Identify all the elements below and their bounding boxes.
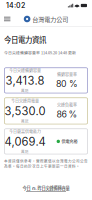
staticText: 86 % (56, 109, 77, 120)
staticText: 台灣電力公司 (32, 15, 68, 23)
staticText: 4,069.4 (4, 135, 45, 149)
staticText: 今日電力資訊 (4, 34, 46, 45)
staticText: 今日尖峰備轉容量 (9, 68, 41, 73)
staticText: 今日尖峰用電量 (11, 98, 39, 104)
staticText: 萬瓩 (21, 88, 29, 93)
staticText: 3,530.0 (4, 104, 45, 118)
staticText: 備轉容量率 (57, 72, 77, 77)
staticText: 今日 vs. 昨日尖峰備轉容量 (22, 185, 69, 191)
staticText: 3,413.8 (5, 74, 44, 88)
staticText: 本資訊僅供參考，實際數值以台灣電力公司公告為準。每日約於次日上午更新前一日資料。 (4, 158, 88, 169)
staticText: 14:02 (6, 1, 25, 10)
staticText: 80 % (56, 78, 78, 89)
staticText: 今日最高供電能力 (9, 129, 41, 134)
staticText: 萬瓩 (21, 149, 29, 154)
button[interactable]: 今日 vs. 昨日尖峰備轉容量 (4, 185, 88, 192)
staticText: 今日尖峰備轉容量率 114.05.20 14:48 更新 (4, 50, 76, 55)
staticText: 尖峰負載率 (57, 102, 77, 108)
staticText: 供電充裕 (61, 138, 77, 144)
staticText: 萬瓩 (21, 118, 29, 124)
button[interactable]: Menu (0, 11, 14, 27)
